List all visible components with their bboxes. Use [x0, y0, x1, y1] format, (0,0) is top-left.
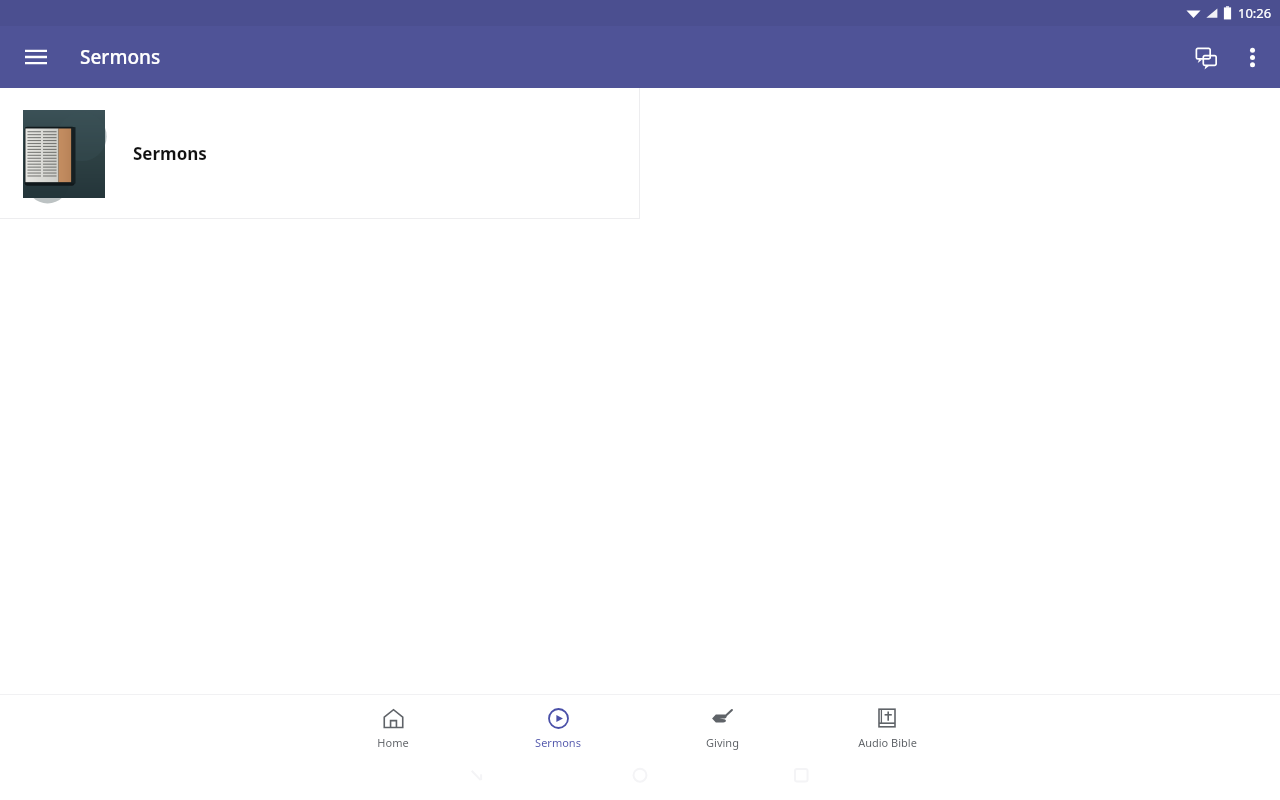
button[interactable]: Sermons — [0, 88, 640, 219]
button[interactable]: Audio Bible — [833, 700, 941, 756]
button[interactable]: Open navigation drawer — [14, 35, 58, 79]
staticText: Sermons — [80, 44, 161, 70]
staticText: Home — [377, 735, 409, 750]
staticText: Giving — [706, 735, 739, 750]
staticText: 10:26 — [1238, 4, 1272, 22]
staticText: Audio Bible — [858, 735, 917, 750]
button[interactable]: Sermons — [504, 700, 612, 756]
staticText: Sermons — [133, 142, 207, 165]
staticText: Sermons — [535, 735, 581, 750]
button[interactable]: Home — [339, 700, 447, 756]
button[interactable]: Chat — [1182, 33, 1230, 81]
button[interactable]: Giving — [668, 700, 776, 756]
button[interactable]: More options — [1230, 35, 1274, 79]
